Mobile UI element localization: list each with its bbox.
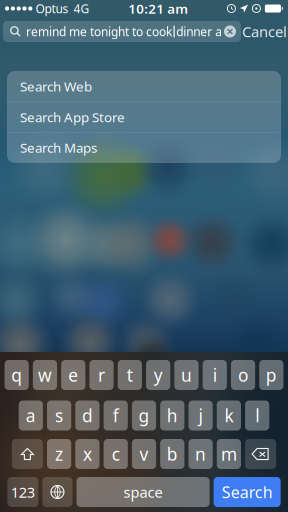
- staticText: g: [138, 404, 149, 427]
- staticText: y: [154, 363, 163, 386]
- staticText: Cancel: [242, 22, 287, 41]
- staticText: 4G: [73, 0, 89, 16]
- button[interactable]: v: [132, 439, 156, 469]
- button[interactable]: space: [76, 477, 209, 507]
- staticText: v: [139, 442, 148, 465]
- button[interactable]: z: [47, 439, 71, 469]
- staticText: k: [224, 404, 233, 427]
- staticText: f: [113, 404, 119, 427]
- button[interactable]: x: [75, 439, 99, 469]
- button[interactable]: q: [5, 360, 29, 390]
- button[interactable]: Shift: [12, 439, 43, 469]
- staticText: p: [266, 363, 277, 386]
- button[interactable]: r: [89, 360, 114, 390]
- staticText: b: [167, 442, 178, 465]
- staticText: dinner a: [176, 23, 222, 39]
- button[interactable]: o: [231, 360, 255, 390]
- staticText: r: [98, 363, 105, 386]
- staticText: t: [127, 363, 133, 386]
- staticText: u: [181, 363, 192, 386]
- staticText: l: [255, 404, 259, 427]
- staticText: 123: [11, 482, 35, 502]
- staticText: c: [112, 442, 120, 465]
- button[interactable]: e: [61, 360, 85, 390]
- staticText: h: [167, 404, 178, 427]
- staticText: Optus: [35, 0, 68, 16]
- button[interactable]: Delete: [245, 439, 276, 469]
- staticText: x: [83, 442, 92, 465]
- staticText: Search: [222, 481, 273, 503]
- button[interactable]: m: [217, 439, 241, 469]
- button[interactable]: remind me tonight to cook: [3, 21, 241, 42]
- button[interactable]: Search App Store: [7, 102, 281, 132]
- button[interactable]: b: [160, 439, 184, 469]
- staticText: space: [123, 482, 162, 502]
- staticText: e: [68, 363, 78, 386]
- staticText: Search Maps: [20, 139, 97, 156]
- staticText: j: [199, 404, 203, 427]
- staticText: q: [11, 363, 22, 386]
- button[interactable]: k: [217, 400, 241, 430]
- button[interactable]: j: [188, 400, 213, 430]
- button[interactable]: s: [47, 400, 71, 430]
- staticText: Search App Store: [20, 108, 125, 126]
- staticText: z: [55, 442, 63, 465]
- staticText: 10:21 am: [128, 0, 188, 17]
- staticText: w: [38, 363, 52, 386]
- button[interactable]: d: [75, 400, 99, 430]
- button[interactable]: w: [33, 360, 57, 390]
- button[interactable]: y: [146, 360, 170, 390]
- button[interactable]: Search Web: [7, 71, 281, 102]
- button[interactable]: 123: [7, 477, 38, 507]
- button[interactable]: f: [104, 400, 128, 430]
- button[interactable]: a: [19, 400, 43, 430]
- button[interactable]: g: [132, 400, 156, 430]
- staticText: Search Web: [20, 77, 92, 95]
- button[interactable]: p: [259, 360, 283, 390]
- staticText: n: [195, 442, 206, 465]
- button[interactable]: c: [104, 439, 128, 469]
- staticText: a: [26, 404, 36, 427]
- button[interactable]: i: [203, 360, 227, 390]
- staticText: remind me tonight to cook: [26, 23, 172, 39]
- button[interactable]: t: [118, 360, 142, 390]
- staticText: m: [221, 442, 237, 465]
- button[interactable]: h: [160, 400, 184, 430]
- staticText: i: [213, 363, 217, 386]
- button[interactable]: Next keyboard: [42, 477, 72, 507]
- staticText: s: [55, 404, 63, 427]
- button[interactable]: u: [174, 360, 199, 390]
- staticText: d: [82, 404, 93, 427]
- button[interactable]: l: [245, 400, 269, 430]
- button[interactable]: Search: [214, 477, 281, 507]
- button[interactable]: Search Maps: [7, 132, 281, 163]
- button[interactable]: Cancel: [241, 21, 288, 42]
- staticText: o: [238, 363, 248, 386]
- button[interactable]: n: [188, 439, 213, 469]
